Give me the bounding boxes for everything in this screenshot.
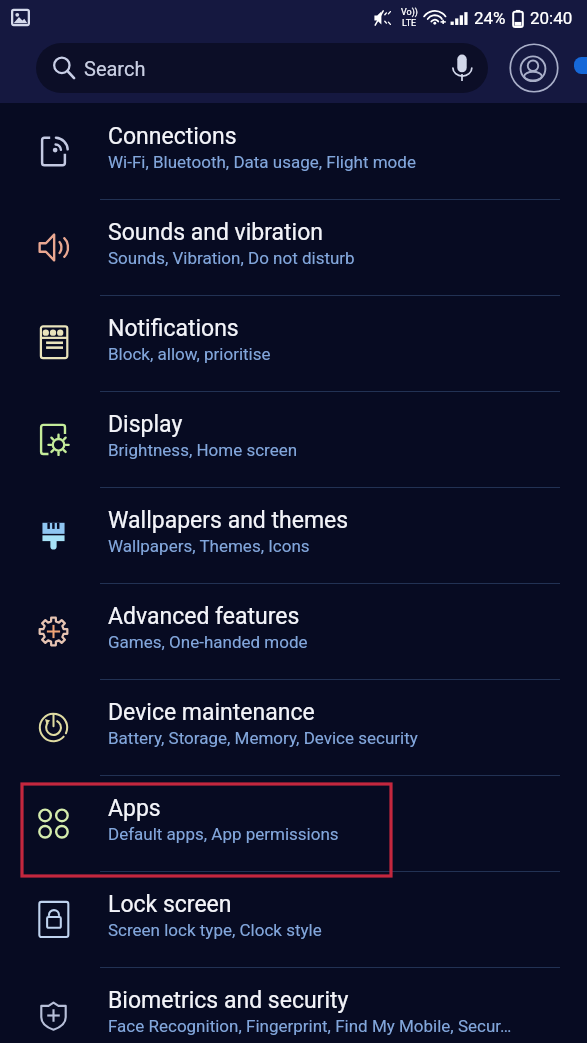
staticText: Lock screen — [108, 891, 232, 918]
staticText: Display — [108, 411, 183, 438]
button[interactable]: Lock screen — [0, 871, 587, 967]
staticText: 20:40 — [530, 8, 573, 28]
staticText: Sounds and vibration — [108, 219, 324, 246]
staticText: Search — [84, 57, 146, 80]
button[interactable]: Search — [36, 43, 488, 93]
button[interactable]: Apps — [0, 775, 587, 871]
button[interactable]: Display — [0, 391, 587, 487]
staticText: Default apps, App permissions — [108, 824, 339, 844]
staticText: Brightness, Home screen — [108, 440, 298, 460]
staticText: Vo)) — [401, 7, 418, 18]
staticText: Block, allow, prioritise — [108, 344, 271, 364]
button[interactable]: Account — [508, 43, 560, 93]
staticText: Advanced features — [108, 603, 300, 630]
button[interactable]: Voice search — [447, 53, 477, 83]
staticText: Wallpapers, Themes, Icons — [108, 536, 310, 556]
staticText: Battery, Storage, Memory, Device securit… — [108, 728, 418, 748]
button[interactable]: Advanced features — [0, 583, 587, 679]
staticText: Screen lock type, Clock style — [108, 920, 322, 940]
staticText: Notifications — [108, 315, 239, 342]
staticText: Games, One-handed mode — [108, 632, 308, 652]
staticText: Device maintenance — [108, 699, 315, 726]
button[interactable]: Device maintenance — [0, 679, 587, 775]
staticText: Biometrics and security — [108, 987, 349, 1014]
button[interactable]: Biometrics and security — [0, 967, 587, 1043]
button[interactable]: Wallpapers and themes — [0, 487, 587, 583]
staticText: Wallpapers and themes — [108, 507, 349, 534]
staticText: Face Recognition, Fingerprint, Find My M… — [108, 1016, 512, 1036]
button[interactable]: Notifications — [0, 295, 587, 391]
staticText: Wi-Fi, Bluetooth, Data usage, Flight mod… — [108, 152, 416, 172]
button[interactable]: Sounds and vibration — [0, 199, 587, 295]
button[interactable]: Connections — [0, 103, 587, 199]
staticText: Apps — [108, 795, 161, 822]
staticText: Connections — [108, 123, 237, 150]
staticText: 24% — [474, 8, 506, 28]
staticText: LTE — [402, 18, 417, 29]
staticText: Sounds, Vibration, Do not disturb — [108, 248, 355, 268]
